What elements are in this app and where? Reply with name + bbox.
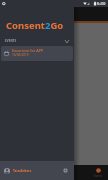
button[interactable]: Settings [60, 165, 71, 176]
staticText: Events [94, 174, 103, 178]
staticText: 6:30 [97, 1, 106, 7]
staticText: Tara Ankers [13, 169, 32, 173]
staticText: 16/06/2019 [12, 53, 29, 57]
staticText: Consent2Go [6, 19, 64, 32]
staticText: EVENTS [5, 39, 17, 43]
button[interactable]: Tara Ankers [0, 161, 74, 180]
button[interactable]: Events [90, 165, 106, 180]
staticText: Excursion for APP [12, 48, 44, 53]
button[interactable]: Excursion for APP [1, 46, 73, 61]
button[interactable]: EVENTS [0, 36, 74, 46]
